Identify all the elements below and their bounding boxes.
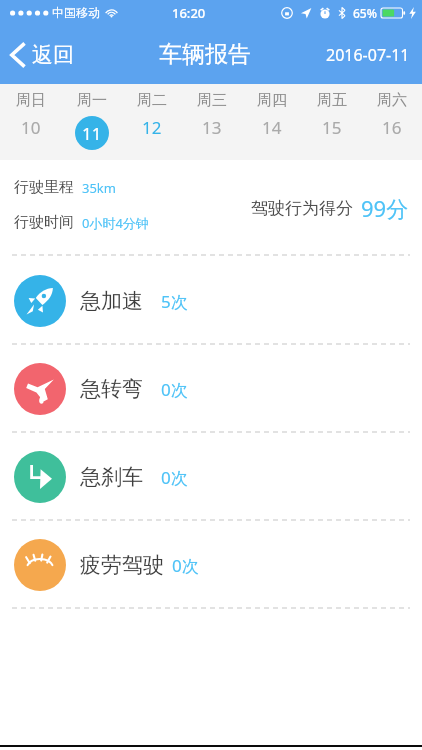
staticText: 周三 (197, 91, 227, 110)
staticText: 16:20 (172, 4, 206, 22)
button[interactable]: 11 (61, 116, 122, 150)
staticText: 返回 (32, 42, 74, 68)
staticText: 11 (82, 122, 102, 145)
button[interactable]: 急加速 (0, 257, 422, 345)
staticText: 周六 (377, 91, 407, 110)
staticText: 65% (353, 5, 377, 21)
staticText: 周一 (77, 91, 107, 110)
staticText: 16 (382, 116, 402, 139)
staticText: 0次 (161, 378, 188, 401)
button[interactable]: 13 (182, 116, 242, 139)
staticText: 急加速 (80, 288, 143, 314)
staticText: 周四 (257, 91, 287, 110)
staticText: 行驶时间 (14, 213, 74, 232)
staticText: 周五 (317, 91, 347, 110)
staticText: 99分 (361, 193, 409, 223)
button[interactable]: 急刹车 (0, 433, 422, 521)
staticText: 5次 (161, 290, 188, 313)
button[interactable]: 16 (362, 116, 422, 139)
staticText: 疲劳驾驶 (80, 552, 164, 578)
button[interactable]: 返回 (0, 36, 86, 74)
staticText: 车辆报告 (159, 40, 251, 69)
staticText: 12 (142, 116, 162, 139)
staticText: 急刹车 (80, 464, 143, 490)
button[interactable]: 急转弯 (0, 345, 422, 433)
staticText: 2016-07-11 (326, 44, 410, 66)
button[interactable]: 15 (302, 116, 362, 139)
staticText: 急转弯 (80, 376, 143, 402)
staticText: 周日 (16, 91, 46, 110)
button[interactable]: 14 (242, 116, 302, 139)
staticText: 0次 (172, 554, 199, 577)
staticText: 14 (262, 116, 282, 139)
staticText: 中国移动 (52, 5, 100, 20)
staticText: 行驶里程 (14, 178, 74, 197)
button[interactable]: 10 (0, 116, 61, 139)
button[interactable]: 疲劳驾驶 (0, 521, 422, 609)
staticText: 15 (322, 116, 342, 139)
staticText: 周二 (137, 91, 167, 110)
staticText: 0小时4分钟 (82, 214, 149, 232)
staticText: 0次 (161, 466, 188, 489)
staticText: 10 (21, 116, 41, 139)
staticText: 35km (82, 179, 116, 197)
staticText: 13 (202, 116, 222, 139)
staticText: 驾驶行为得分 (251, 198, 353, 219)
button[interactable]: 12 (122, 116, 182, 139)
